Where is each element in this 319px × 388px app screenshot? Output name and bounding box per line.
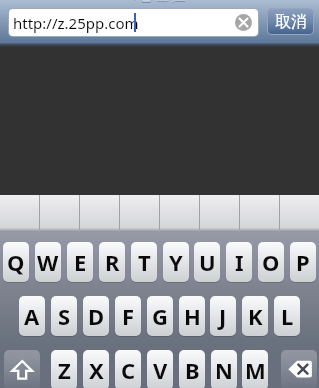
staticText: I [235,247,244,277]
button[interactable]: I [226,242,252,282]
button[interactable] [40,195,79,232]
staticText: T [138,247,151,277]
staticText: M [245,355,266,385]
button[interactable]: L [274,296,300,336]
button[interactable]: S [51,296,77,336]
button[interactable] [240,195,279,232]
button[interactable]: D [83,296,109,336]
button[interactable]: Q [3,242,29,282]
button[interactable] [80,195,119,232]
staticText: 地址栏 [134,0,185,6]
staticText: 地址栏 [134,0,185,5]
staticText: S [58,301,71,331]
staticText: A [24,301,40,331]
staticText: U [199,247,216,277]
button[interactable]: U [194,242,220,282]
button[interactable]: V [147,350,173,388]
button[interactable]: P [290,242,316,282]
staticText: E [74,247,87,277]
button[interactable] [120,195,159,232]
button[interactable]: M [242,350,268,388]
staticText: D [88,301,105,331]
staticText: N [215,355,233,385]
staticText: W [37,247,59,277]
staticText: K [248,301,263,331]
button[interactable]: 取消 [267,8,314,35]
staticText: C [121,355,136,385]
staticText: L [281,301,294,331]
button[interactable]: J [210,296,236,336]
staticText: Q [7,247,25,277]
staticText: Y [169,247,183,277]
button[interactable]: F [115,296,141,336]
staticText: G [152,301,168,331]
button[interactable]: W [35,242,61,282]
button[interactable] [0,195,39,232]
button[interactable]: B [179,350,205,388]
staticText: P [296,247,310,277]
staticText: V [153,355,168,385]
button[interactable]: Shift [4,350,40,388]
button[interactable]: R [99,242,125,282]
button[interactable]: http://z.25pp.com [8,8,259,37]
staticText: H [184,301,201,331]
button[interactable]: C [115,350,141,388]
button[interactable] [160,195,199,232]
button[interactable]: Y [163,242,189,282]
button[interactable]: X [83,350,109,388]
staticText: R [105,247,120,277]
button[interactable]: N [211,350,237,388]
staticText: X [89,355,104,385]
staticText: Z [58,355,71,385]
button[interactable]: A [19,296,45,336]
staticText: B [185,355,200,385]
staticText: http://z.25pp.com [13,13,139,33]
staticText: 取消 [275,12,307,32]
button[interactable]: T [131,242,157,282]
button[interactable] [280,195,319,232]
button[interactable]: K [242,296,268,336]
button[interactable]: Z [51,350,77,388]
staticText: J [219,301,227,331]
button[interactable]: E [67,242,93,282]
button[interactable] [200,195,239,232]
button[interactable]: H [179,296,205,336]
staticText: O [262,247,280,277]
button[interactable]: G [147,296,173,336]
button[interactable]: O [258,242,284,282]
staticText: F [122,301,135,331]
button[interactable]: Clear text [235,14,252,31]
button[interactable]: Backspace [281,350,317,388]
